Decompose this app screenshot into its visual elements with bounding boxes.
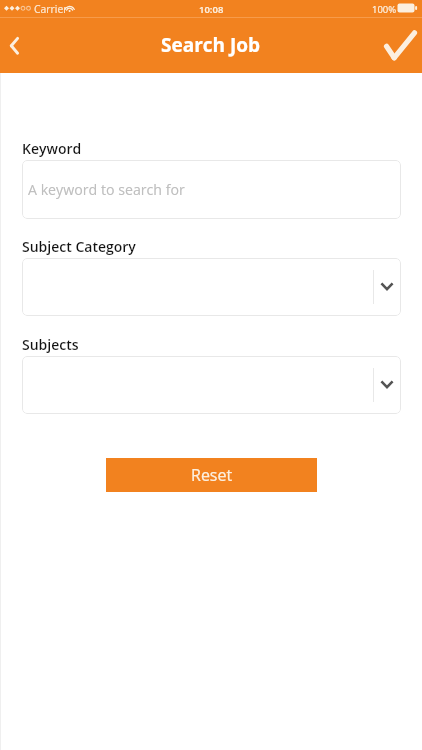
button[interactable]: Reset <box>106 458 317 492</box>
staticText: Search Job <box>161 32 261 58</box>
staticText: 10:08 <box>199 3 224 16</box>
staticText: Reset <box>191 464 233 486</box>
button[interactable]: A keyword to search for <box>22 160 401 219</box>
staticText: Keyword <box>22 139 82 158</box>
button[interactable]: Open dropdown <box>22 356 401 414</box>
staticText: A keyword to search for <box>28 180 185 199</box>
staticText: Subject Category <box>22 237 136 256</box>
button[interactable]: Back <box>0 18 30 73</box>
staticText: Carrier <box>34 2 68 16</box>
staticText: Subjects <box>22 335 79 354</box>
staticText: 100% <box>372 3 397 16</box>
button[interactable]: Open dropdown <box>22 258 401 316</box>
other: Open dropdown <box>377 281 393 293</box>
other: Open dropdown <box>377 379 393 391</box>
button[interactable]: Confirm <box>374 18 422 73</box>
